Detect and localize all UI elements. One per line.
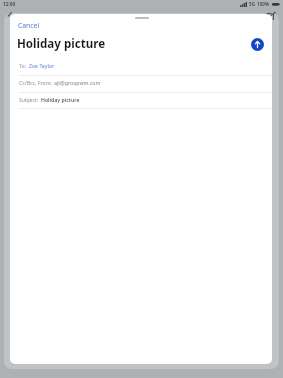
staticText: Subject:: [19, 96, 39, 103]
staticText: ajt@groupwm.com: [54, 79, 101, 86]
staticText: Cancel: [18, 21, 40, 30]
staticText: Cc/Bcc, From:: [19, 79, 52, 86]
button[interactable]: Subject:: [10, 92, 272, 109]
button[interactable]: Cc/Bcc, From:: [10, 75, 272, 92]
button[interactable]: To:: [10, 58, 272, 75]
staticText: To:: [19, 62, 27, 69]
button[interactable]: Send: [251, 38, 264, 51]
button[interactable]: Cancel: [14, 19, 44, 31]
staticText: Holiday picture: [41, 96, 80, 103]
staticText: Zoe Taylor: [29, 62, 55, 69]
staticText: Holiday picture: [17, 36, 106, 52]
staticText: 12:00: [3, 1, 16, 8]
staticText: 100%: [257, 1, 270, 7]
staticText: 5G: [249, 1, 255, 7]
